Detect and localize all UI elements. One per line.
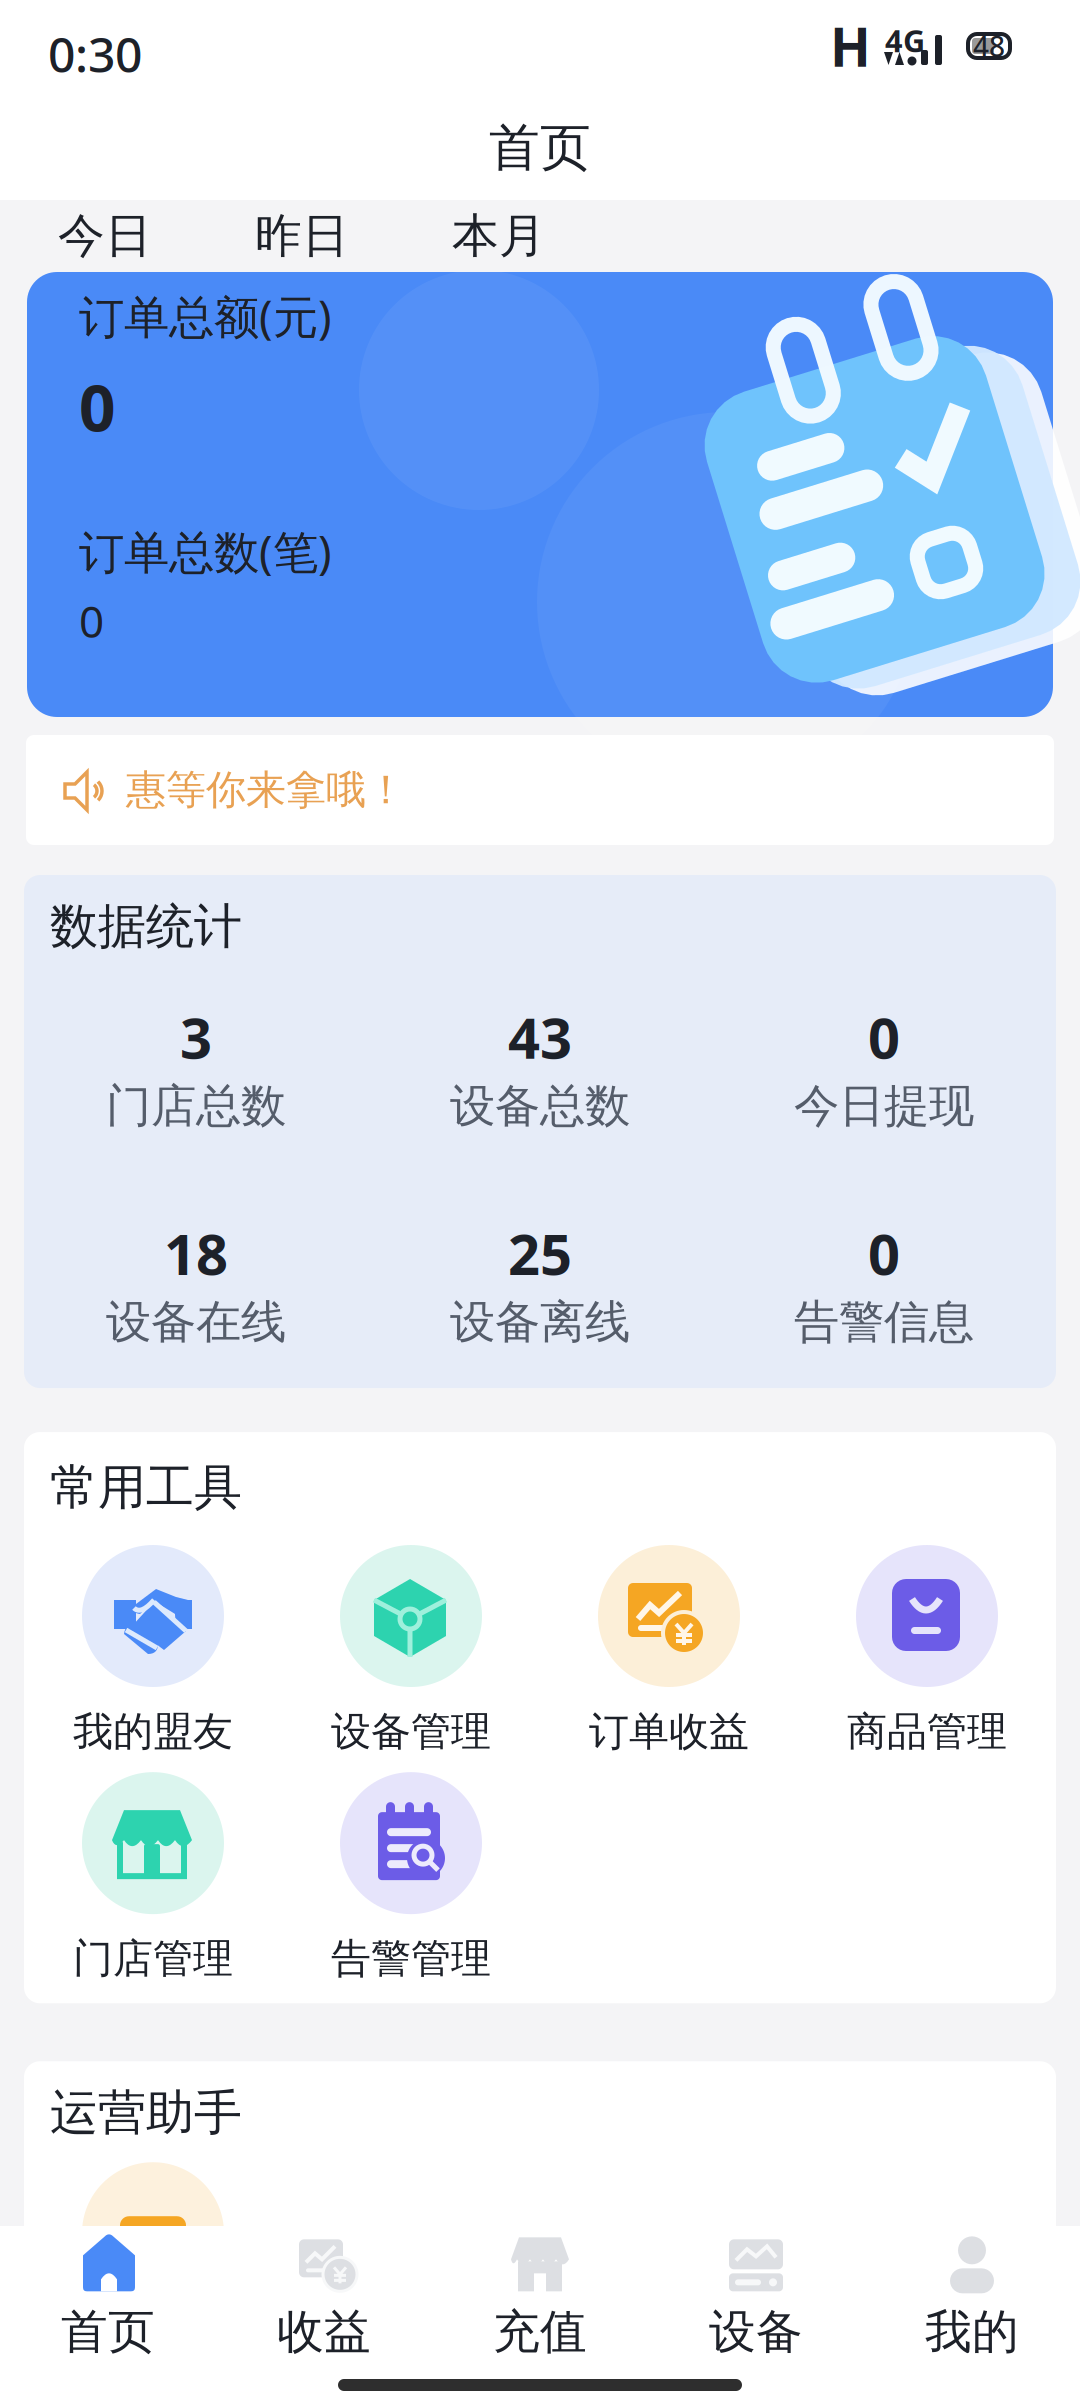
button[interactable]: 设备管理	[282, 1545, 540, 1756]
staticText: 收益	[277, 2303, 371, 2361]
staticText: 3	[180, 1000, 212, 1074]
staticText: 43	[508, 1000, 572, 1074]
staticText: 订单总额(元)	[79, 286, 332, 346]
staticText: 我的	[925, 2303, 1019, 2361]
staticText: 首页	[489, 117, 591, 179]
button[interactable]: 门店管理	[24, 1772, 282, 1983]
staticText: 0	[79, 364, 116, 449]
staticText: 今日提现	[794, 1078, 974, 1134]
staticText: 设备总数	[450, 1078, 630, 1134]
button[interactable]: 惠等你来拿哦！	[0, 717, 1080, 845]
staticText: 门店总数	[106, 1078, 286, 1134]
button[interactable]: 设备	[648, 2229, 864, 2361]
button[interactable]: 告警管理	[282, 1772, 540, 1983]
button[interactable]: 充值	[432, 2229, 648, 2361]
staticText: 商品管理	[847, 1707, 1007, 1756]
button[interactable]: 本月	[452, 200, 649, 272]
staticText: 运营数据	[73, 2324, 233, 2373]
staticText: 常用工具	[50, 1458, 242, 1517]
staticText: 告警管理	[331, 1934, 491, 1983]
staticText: 25	[508, 1216, 572, 1290]
button[interactable]: 今日	[58, 200, 255, 272]
button[interactable]: 首页	[0, 2229, 216, 2361]
staticText: 惠等你来拿哦！	[126, 765, 406, 814]
staticText: 48	[973, 27, 1005, 65]
staticText: 告警信息	[794, 1294, 974, 1350]
staticText: 设备在线	[106, 1294, 286, 1350]
button[interactable]: 我的盟友	[24, 1545, 282, 1756]
button[interactable]: 43	[368, 1000, 712, 1134]
button[interactable]: 商品管理	[798, 1545, 1056, 1756]
staticText: 4G	[885, 20, 925, 61]
staticText: 我的盟友	[73, 1707, 233, 1756]
button[interactable]: 昨日	[255, 200, 452, 272]
staticText: 0	[868, 1000, 900, 1074]
button[interactable]: 我的	[864, 2229, 1080, 2361]
button[interactable]: 0	[712, 1000, 1056, 1134]
button[interactable]: 25	[368, 1216, 712, 1350]
staticText: 充值	[493, 2303, 587, 2361]
staticText: 订单收益	[589, 1707, 749, 1756]
button[interactable]: 运营数据	[24, 2162, 282, 2373]
staticText: 门店管理	[73, 1934, 233, 1983]
staticText: H	[830, 11, 871, 81]
staticText: 18	[164, 1216, 228, 1290]
staticText: 0	[868, 1216, 900, 1290]
button[interactable]: 18	[24, 1216, 368, 1350]
staticText: 0:30	[48, 22, 142, 86]
staticText: 设备管理	[331, 1707, 491, 1756]
staticText: 设备离线	[450, 1294, 630, 1350]
staticText: 0	[79, 591, 104, 650]
button[interactable]: 收益	[216, 2229, 432, 2361]
staticText: 首页	[61, 2303, 155, 2361]
button[interactable]: 0	[712, 1216, 1056, 1350]
staticText: 昨日	[255, 207, 349, 265]
staticText: 运营助手	[50, 2083, 242, 2142]
staticText: 数据统计	[50, 897, 242, 956]
staticText: 订单总数(笔)	[79, 521, 332, 581]
staticText: 设备	[709, 2303, 803, 2361]
staticText: 本月	[452, 207, 546, 265]
button[interactable]: 订单总额(元)	[0, 272, 1080, 717]
button[interactable]: 3	[24, 1000, 368, 1134]
staticText: 今日	[58, 207, 152, 265]
button[interactable]: 订单收益	[540, 1545, 798, 1756]
